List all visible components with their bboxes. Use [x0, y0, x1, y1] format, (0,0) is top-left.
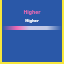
staticText: Higher: [2, 9, 62, 16]
staticText: Higher: [2, 18, 62, 23]
